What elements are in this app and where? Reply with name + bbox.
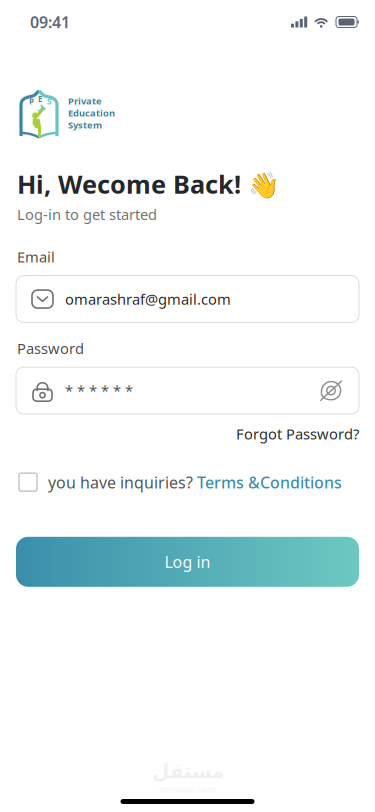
- staticText: 09:41: [30, 11, 70, 33]
- staticText: Hi, Wecome Back! 👋: [17, 167, 280, 201]
- staticText: S: [47, 96, 51, 107]
- staticText: مستقل: [151, 760, 223, 783]
- staticText: Terms &Conditions: [197, 472, 342, 493]
- staticText: * * * * * *: [65, 381, 133, 400]
- staticText: Password: [17, 339, 84, 358]
- staticText: Forgot Password?: [236, 424, 359, 444]
- button[interactable]: omarashraf@gmail.com: [16, 276, 359, 323]
- staticText: Private: [68, 95, 102, 107]
- staticText: Education: [68, 107, 115, 119]
- staticText: E: [38, 94, 42, 104]
- staticText: Log-in to get started: [17, 205, 157, 224]
- staticText: P: [29, 96, 34, 107]
- staticText: Log in: [164, 551, 210, 572]
- button[interactable]: Log in: [16, 537, 359, 587]
- staticText: Email: [17, 247, 55, 267]
- button[interactable]: Accept terms: [19, 473, 37, 491]
- button[interactable]: Show password: [319, 380, 343, 402]
- staticText: you have inquiries?: [48, 472, 197, 493]
- button[interactable]: Terms &Conditions: [197, 472, 342, 493]
- staticText: omarashraf@gmail.com: [65, 289, 231, 309]
- staticText: System: [68, 119, 102, 131]
- staticText: mostaql.com: [159, 783, 216, 795]
- button[interactable]: Forgot Password?: [236, 424, 359, 444]
